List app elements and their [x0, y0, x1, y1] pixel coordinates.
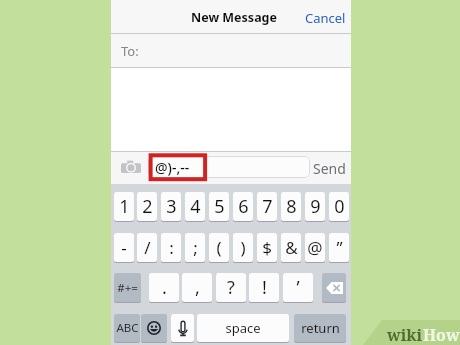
staticText: @)-,-- — [155, 158, 190, 177]
button[interactable]: Backspace — [322, 273, 346, 302]
staticText: . — [162, 275, 167, 300]
staticText: 1 — [119, 194, 130, 219]
button[interactable]: , — [182, 273, 212, 302]
staticText: 2 — [142, 194, 153, 219]
button[interactable]: & — [281, 233, 301, 262]
button[interactable]: Take photo — [121, 159, 141, 173]
staticText: - — [121, 236, 127, 259]
button[interactable]: To: — [111, 34, 351, 68]
button[interactable]: ’ — [283, 273, 313, 302]
staticText: Send — [313, 159, 346, 178]
staticText: , — [195, 275, 200, 300]
button[interactable]: . — [149, 273, 179, 302]
button[interactable]: ( — [209, 233, 229, 262]
staticText: 9 — [310, 194, 321, 219]
staticText: How — [423, 324, 460, 345]
button[interactable]: / — [137, 233, 157, 262]
button[interactable]: Cancel — [305, 9, 346, 27]
button[interactable]: ” — [329, 233, 349, 262]
staticText: To: — [121, 42, 139, 60]
staticText: space — [225, 319, 261, 337]
button[interactable]: ? — [216, 273, 246, 302]
staticText: 4 — [190, 194, 201, 219]
staticText: 8 — [286, 194, 297, 219]
staticText: ABC — [116, 320, 139, 336]
staticText: return — [301, 319, 340, 337]
button[interactable]: 1 — [114, 192, 134, 221]
button[interactable]: ABC — [114, 314, 140, 342]
staticText: wiki — [387, 324, 423, 345]
button[interactable]: ! — [249, 273, 279, 302]
staticText: 3 — [166, 194, 177, 219]
button[interactable]: @)-,-- — [148, 156, 310, 178]
staticText: ) — [240, 236, 246, 259]
staticText: Cancel — [305, 9, 346, 27]
button[interactable]: @ — [305, 233, 325, 262]
staticText: $ — [262, 236, 272, 259]
button[interactable]: 5 — [209, 192, 229, 221]
button[interactable]: space — [197, 314, 289, 342]
button[interactable]: $ — [257, 233, 277, 262]
button[interactable]: #+= — [114, 273, 141, 302]
staticText: #+= — [117, 280, 138, 296]
staticText: / — [144, 236, 151, 259]
button[interactable]: 2 — [137, 192, 157, 221]
staticText: : — [169, 236, 174, 259]
button[interactable]: 4 — [185, 192, 205, 221]
button[interactable]: Dictate — [171, 314, 194, 342]
button[interactable]: 0 — [329, 192, 349, 221]
button[interactable]: return — [294, 314, 346, 342]
staticText: 7 — [262, 194, 273, 219]
button[interactable]: 8 — [281, 192, 301, 221]
staticText: ? — [227, 275, 235, 300]
staticText: ” — [336, 236, 343, 259]
button[interactable]: 7 — [257, 192, 277, 221]
staticText: ; — [193, 236, 198, 259]
staticText: ’ — [296, 275, 300, 300]
staticText: ! — [262, 275, 267, 300]
staticText: 0 — [334, 194, 345, 219]
button[interactable]: : — [161, 233, 181, 262]
staticText: @ — [307, 236, 323, 259]
staticText: 5 — [214, 194, 225, 219]
button[interactable]: 3 — [161, 192, 181, 221]
button[interactable]: Emoji — [141, 314, 167, 342]
staticText: ( — [216, 236, 222, 259]
button[interactable]: Send — [313, 159, 346, 178]
button[interactable]: 6 — [233, 192, 253, 221]
staticText: 6 — [238, 194, 249, 219]
staticText: New Message — [191, 9, 277, 26]
button[interactable]: ) — [233, 233, 253, 262]
staticText: & — [285, 236, 298, 259]
button[interactable]: 9 — [305, 192, 325, 221]
button[interactable]: ; — [185, 233, 205, 262]
button[interactable]: - — [114, 233, 134, 262]
